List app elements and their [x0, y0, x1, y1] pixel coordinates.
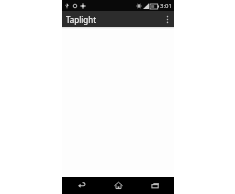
staticText: Taplight: [66, 14, 97, 25]
button[interactable]: Back: [62, 177, 100, 194]
button[interactable]: Recents: [137, 177, 174, 194]
staticText: 3:01: [160, 2, 172, 10]
button[interactable]: Home: [100, 177, 137, 194]
button[interactable]: More options: [160, 11, 174, 27]
